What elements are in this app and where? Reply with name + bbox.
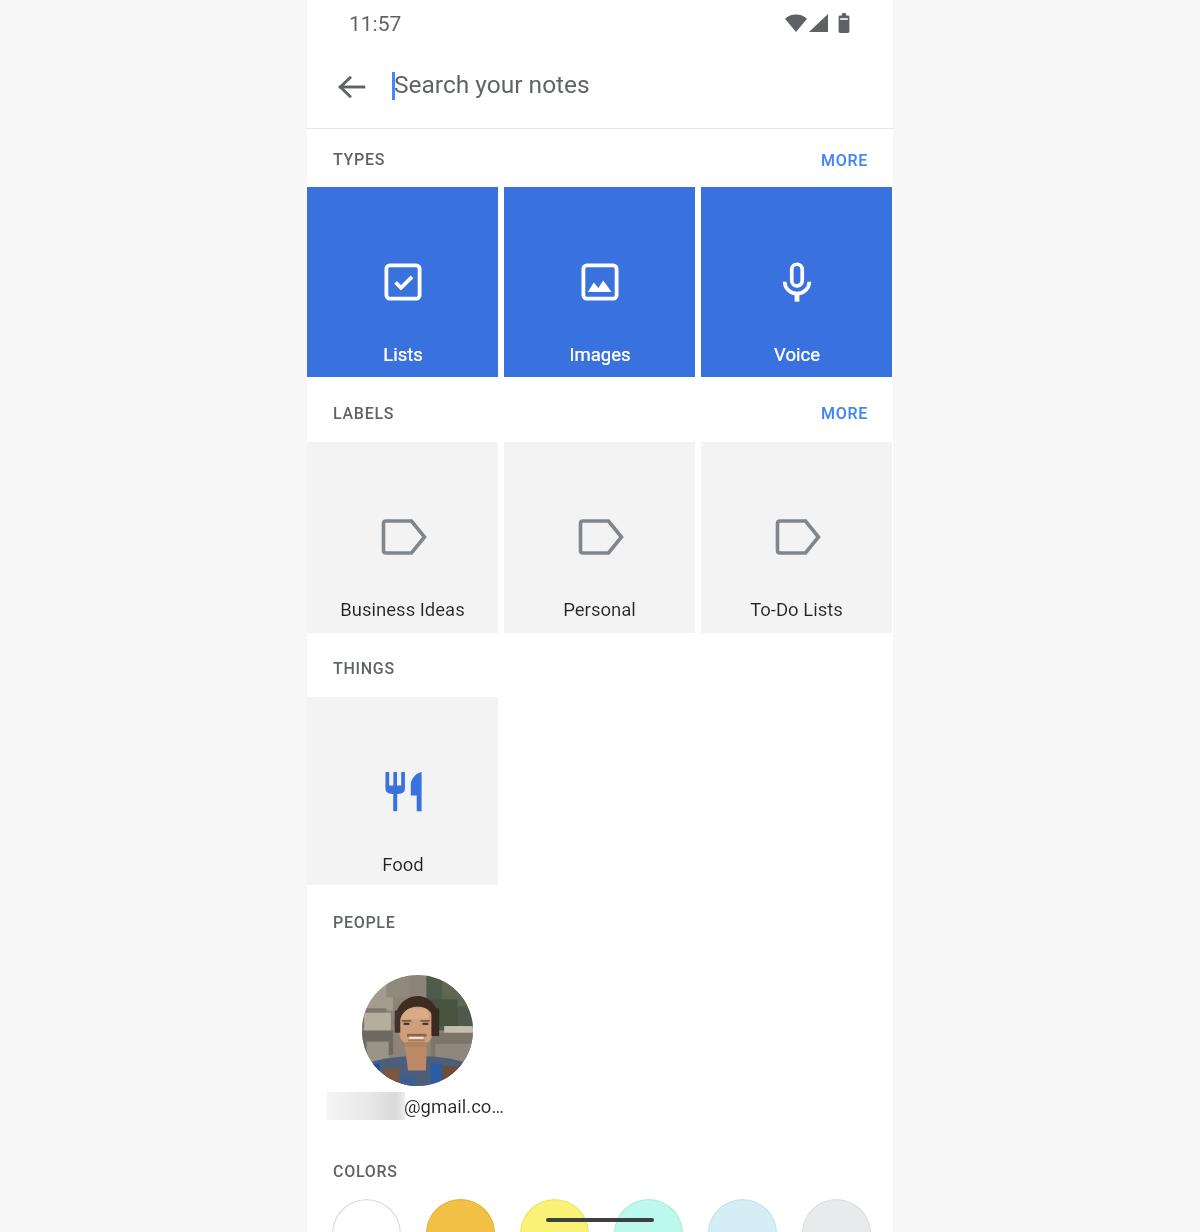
button[interactable]: Color swatch bbox=[426, 1199, 495, 1232]
button[interactable]: Business Ideas bbox=[307, 442, 498, 633]
staticText: LABELS bbox=[333, 404, 395, 423]
button[interactable]: To-Do Lists bbox=[701, 442, 892, 633]
button[interactable]: MORE bbox=[796, 377, 893, 442]
button[interactable]: Contact bbox=[321, 959, 511, 1129]
staticText: MORE bbox=[821, 404, 868, 423]
staticText: MORE bbox=[821, 151, 868, 170]
button[interactable]: Images bbox=[504, 187, 695, 377]
staticText: Images bbox=[569, 344, 631, 366]
button[interactable]: Search your notes bbox=[387, 52, 973, 128]
staticText: 11:57 bbox=[349, 12, 402, 37]
button[interactable]: Color swatch bbox=[332, 1199, 401, 1232]
button[interactable]: Color swatch bbox=[520, 1199, 589, 1232]
button[interactable]: Food bbox=[307, 697, 498, 885]
staticText: Lists bbox=[383, 344, 423, 366]
staticText: THINGS bbox=[333, 659, 395, 678]
button[interactable]: MORE bbox=[796, 129, 893, 187]
staticText: Business Ideas bbox=[340, 599, 465, 621]
button[interactable]: Voice bbox=[701, 187, 892, 377]
staticText: Food bbox=[382, 854, 424, 876]
staticText: @gmail.co… bbox=[404, 1096, 504, 1118]
staticText: Search your notes bbox=[394, 70, 590, 99]
button[interactable]: Back bbox=[322, 57, 382, 117]
button[interactable]: Personal bbox=[504, 442, 695, 633]
staticText: TYPES bbox=[333, 150, 386, 169]
staticText: To-Do Lists bbox=[750, 599, 843, 621]
button[interactable]: Color swatch bbox=[708, 1199, 777, 1232]
button[interactable]: Color swatch bbox=[802, 1199, 871, 1232]
staticText: Voice bbox=[774, 344, 820, 366]
staticText: Personal bbox=[563, 599, 636, 621]
staticText: PEOPLE bbox=[333, 913, 396, 932]
button[interactable]: Lists bbox=[307, 187, 498, 377]
button[interactable]: Color swatch bbox=[614, 1199, 683, 1232]
staticText: COLORS bbox=[333, 1162, 398, 1181]
